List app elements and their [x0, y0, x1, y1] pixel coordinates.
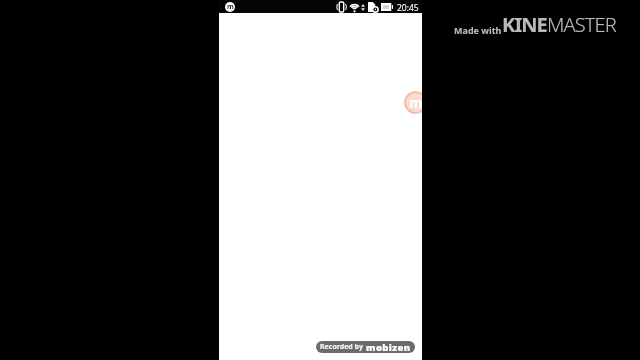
staticText: MASTER: [547, 11, 616, 38]
other: Mobizen notification: [225, 2, 235, 12]
staticText: mobizen: [366, 341, 411, 353]
other: Screen recording: [368, 2, 378, 12]
button[interactable]: Mobizen recorder menu: [404, 91, 422, 114]
staticText: KINE: [502, 11, 547, 38]
other: Battery: [381, 3, 393, 11]
staticText: m: [227, 2, 234, 12]
staticText: Made with: [454, 24, 502, 36]
other: Vibrate mode: [336, 2, 347, 12]
button[interactable]: Recorded by: [316, 341, 415, 353]
staticText: 20:45: [397, 2, 419, 14]
other: Data transfer: [361, 4, 365, 11]
staticText: m: [409, 93, 422, 112]
staticText: Recorded by: [320, 342, 363, 352]
other: Wi-Fi connected: [349, 2, 360, 12]
